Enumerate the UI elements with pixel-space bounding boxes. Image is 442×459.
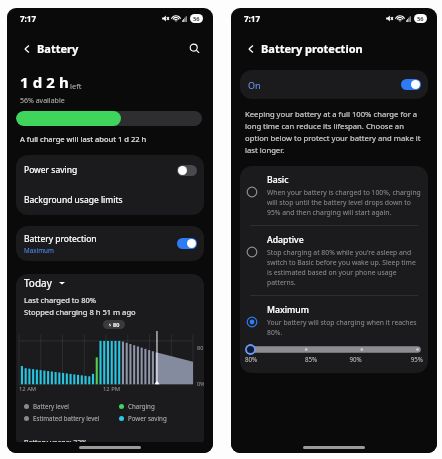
staticText: 1 d 2 h <box>20 72 69 92</box>
staticText: Battery protection <box>261 41 363 56</box>
staticText: 0% <box>197 380 204 387</box>
button[interactable]: Battery protection <box>16 226 204 261</box>
staticText: Today <box>24 276 52 290</box>
button[interactable]: Power saving <box>16 155 204 185</box>
button[interactable]: On <box>177 238 197 249</box>
button[interactable]: Background usage limits <box>16 185 204 215</box>
staticText: 95% <box>378 355 423 363</box>
staticText: 85% <box>289 355 333 363</box>
staticText: 12 AM <box>19 385 37 393</box>
staticText: Stopped charging 8 h 51 m ago <box>24 307 136 317</box>
button[interactable]: On <box>401 79 421 90</box>
staticText: left <box>70 81 82 91</box>
staticText: Battery level <box>33 402 69 410</box>
button[interactable]: Today <box>24 276 65 290</box>
staticText: 80% <box>245 355 289 363</box>
button[interactable]: Charge limit slider <box>245 345 423 354</box>
staticText: 12 PM <box>103 385 120 393</box>
button[interactable]: Adaptive <box>240 226 428 295</box>
staticText: Your battery will stop charging when it … <box>267 318 422 337</box>
staticText: When your battery is charged to 100%, ch… <box>267 188 422 217</box>
staticText: Basic <box>267 174 289 186</box>
staticText: Charging <box>128 402 155 410</box>
staticText: Keeping your battery at a full 100% char… <box>245 109 422 156</box>
staticText: 80 <box>113 321 120 328</box>
staticText: Power saving <box>24 164 78 176</box>
staticText: Estimated battery level <box>33 414 100 422</box>
button[interactable]: Back <box>20 42 33 55</box>
staticText: A full charge will last about 1 d 22 h <box>20 134 147 144</box>
staticText: Last charged to 80% <box>24 295 97 305</box>
staticText: 7:17 <box>20 13 36 24</box>
staticText: Maximum <box>267 304 309 316</box>
staticText: Power saving <box>128 414 167 422</box>
staticText: 7:17 <box>244 13 260 24</box>
staticText: 56 <box>193 15 200 23</box>
staticText: Maximum <box>24 246 54 255</box>
staticText: Adaptive <box>267 234 304 246</box>
staticText: Battery usage: 32% <box>24 438 88 448</box>
staticText: 56 <box>417 15 424 23</box>
staticText: Stop charging at 80% while you're asleep… <box>267 248 422 287</box>
staticText: Background usage limits <box>24 194 123 206</box>
button[interactable]: Back <box>244 42 257 55</box>
staticText: 80 <box>197 344 204 351</box>
staticText: 90% <box>333 355 378 363</box>
staticText: Battery protection <box>24 233 97 245</box>
button[interactable]: Off <box>177 165 197 176</box>
staticText: 56% available <box>20 96 65 106</box>
button[interactable]: Basic <box>240 166 428 225</box>
staticText: On <box>248 79 261 91</box>
button[interactable]: Maximum <box>240 296 428 345</box>
staticText: Battery <box>37 41 79 56</box>
button[interactable]: On <box>240 70 428 99</box>
button[interactable]: Search <box>187 41 202 56</box>
